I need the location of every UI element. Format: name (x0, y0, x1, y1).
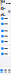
button[interactable] (0, 34, 11, 39)
staticText: 9:41 (0, 0, 5, 7)
button[interactable] (0, 28, 11, 34)
button[interactable] (0, 39, 11, 44)
button[interactable]: Home (0, 67, 4, 75)
button[interactable] (0, 51, 11, 56)
button[interactable] (0, 46, 11, 51)
button[interactable] (0, 16, 11, 21)
staticText: Today (0, 0, 6, 26)
button[interactable]: Profile (7, 67, 11, 75)
button[interactable] (0, 21, 11, 26)
button[interactable]: Search (4, 67, 7, 75)
